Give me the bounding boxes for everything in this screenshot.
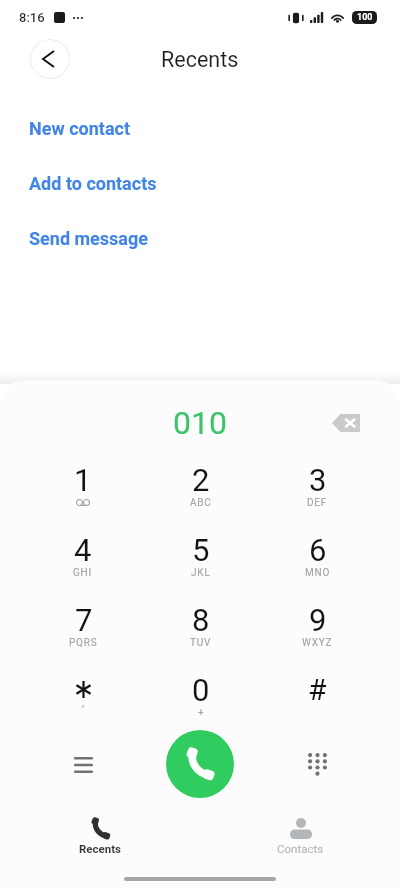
button[interactable]: , bbox=[24, 668, 142, 738]
button[interactable]: 7 bbox=[24, 598, 142, 668]
staticText: WXYZ bbox=[302, 637, 333, 649]
button[interactable]: 4 bbox=[24, 528, 142, 598]
button[interactable]: # bbox=[259, 668, 376, 738]
staticText: DEF bbox=[307, 497, 328, 509]
button[interactable]: Send message bbox=[0, 211, 400, 266]
button[interactable]: 8 bbox=[142, 598, 259, 668]
staticText: GHI bbox=[73, 567, 93, 579]
staticText: 8 bbox=[192, 602, 210, 638]
staticText: 9 bbox=[309, 602, 327, 638]
button[interactable]: 3 bbox=[259, 458, 376, 528]
staticText: Recents bbox=[161, 47, 239, 72]
button[interactable]: Add to contacts bbox=[0, 156, 400, 211]
button[interactable]: Recents bbox=[0, 815, 200, 863]
staticText: 5 bbox=[192, 532, 210, 568]
staticText: 1 bbox=[74, 462, 92, 498]
staticText: 7 bbox=[75, 602, 93, 638]
staticText: 100 bbox=[357, 12, 373, 23]
button[interactable]: 2 bbox=[142, 458, 259, 528]
button[interactable]: 9 bbox=[259, 598, 376, 668]
staticText: 8:16 bbox=[19, 10, 45, 25]
staticText: ABC bbox=[190, 497, 212, 509]
button[interactable]: Keypad bbox=[259, 738, 376, 792]
button[interactable]: Back bbox=[30, 39, 70, 79]
staticText: New contact bbox=[29, 118, 131, 139]
staticText: PQRS bbox=[69, 637, 98, 649]
button[interactable]: Contacts bbox=[200, 815, 400, 863]
staticText: + bbox=[198, 707, 205, 719]
button[interactable]: 1 bbox=[24, 458, 142, 528]
staticText: 010 bbox=[173, 404, 227, 442]
staticText: , bbox=[82, 697, 85, 709]
staticText: 2 bbox=[192, 462, 210, 498]
staticText: JKL bbox=[191, 567, 211, 579]
staticText: 4 bbox=[74, 532, 92, 568]
staticText: 6 bbox=[309, 532, 327, 568]
button[interactable]: Call bbox=[166, 730, 234, 798]
staticText: 0 bbox=[192, 672, 210, 708]
button[interactable]: Backspace bbox=[324, 401, 368, 445]
staticText: Contacts bbox=[277, 842, 324, 855]
button[interactable]: 0 bbox=[142, 668, 259, 738]
staticText: Add to contacts bbox=[29, 173, 157, 194]
button[interactable]: Call log options bbox=[24, 738, 142, 792]
staticText: Recents bbox=[79, 842, 122, 855]
staticText: 3 bbox=[309, 462, 327, 498]
staticText: # bbox=[308, 672, 327, 707]
button[interactable]: 6 bbox=[259, 528, 376, 598]
staticText: MNO bbox=[305, 567, 331, 579]
staticText: TUV bbox=[190, 637, 212, 649]
button[interactable]: 5 bbox=[142, 528, 259, 598]
staticText: Send message bbox=[29, 228, 149, 249]
button[interactable]: New contact bbox=[0, 101, 400, 156]
